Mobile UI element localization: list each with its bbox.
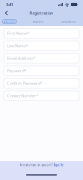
staticText: 3:41 <box>6 2 13 7</box>
staticText: Contact Number* <box>7 93 38 98</box>
staticText: Account <box>32 20 43 23</box>
button[interactable]: Back <box>3 9 10 17</box>
staticText: Registration <box>29 10 53 16</box>
button[interactable]: First Name* <box>4 28 79 38</box>
button[interactable]: Account <box>30 19 45 24</box>
button[interactable]: Personal <box>2 19 17 24</box>
staticText: Password* <box>7 68 26 73</box>
button[interactable]: Email Address* <box>4 53 79 63</box>
staticText: Documents <box>60 20 75 23</box>
button[interactable]: Password* <box>4 66 79 76</box>
button[interactable]: Contact Number* <box>4 91 79 101</box>
staticText: Last Name* <box>7 43 28 48</box>
staticText: Personal <box>3 20 16 23</box>
button[interactable]: Confirm Password* <box>4 78 79 88</box>
staticText: Sign In <box>53 163 63 167</box>
button[interactable]: Already have an account? <box>0 163 83 167</box>
staticText: Confirm Password* <box>7 81 42 86</box>
button[interactable]: Last Name* <box>4 41 79 51</box>
staticText: Email Address* <box>7 56 35 61</box>
staticText: Already have an account? <box>19 163 52 167</box>
staticText: First Name* <box>7 31 29 36</box>
button[interactable]: Documents <box>59 19 77 24</box>
